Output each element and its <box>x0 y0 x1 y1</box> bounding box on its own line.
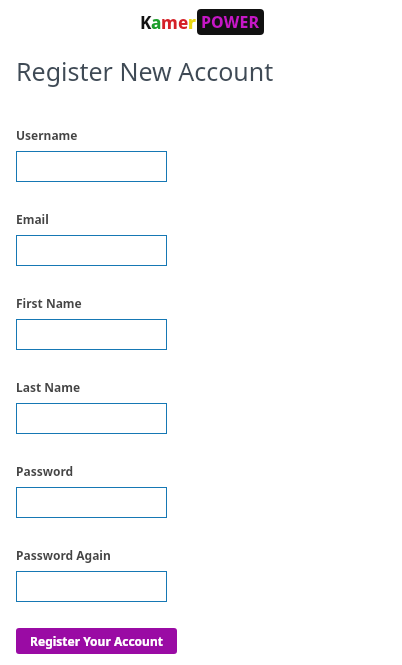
button[interactable]: Register Your Account <box>16 628 177 654</box>
button[interactable] <box>16 571 167 602</box>
staticText: m <box>161 11 178 34</box>
button[interactable] <box>16 403 167 434</box>
button[interactable] <box>16 151 167 182</box>
staticText: Password <box>16 463 74 479</box>
staticText: POWER <box>201 11 260 33</box>
staticText: K <box>140 11 151 34</box>
staticText: Username <box>16 127 78 143</box>
button[interactable] <box>16 319 167 350</box>
staticText: a <box>151 11 161 34</box>
staticText: Last Name <box>16 379 81 395</box>
staticText: Register New Account <box>16 54 274 88</box>
button[interactable] <box>16 235 167 266</box>
staticText: First Name <box>16 295 82 311</box>
staticText: Register Your Account <box>30 633 163 649</box>
staticText: e <box>178 11 188 34</box>
button[interactable]: KamerPower home <box>140 9 264 35</box>
staticText: r <box>188 11 196 34</box>
staticText: Email <box>16 211 49 227</box>
staticText: Password Again <box>16 547 111 563</box>
button[interactable] <box>16 487 167 518</box>
